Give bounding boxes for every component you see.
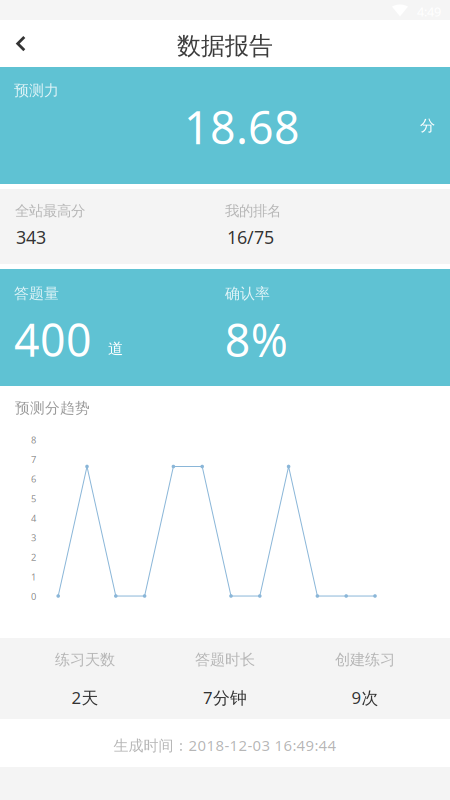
staticText: 练习天数 (55, 650, 115, 669)
staticText: 预测力 (14, 81, 59, 100)
staticText: 1 (31, 570, 36, 583)
staticText: 400 (14, 309, 92, 370)
staticText: 2天 (71, 686, 98, 709)
staticText: 创建练习 (335, 650, 395, 669)
staticText: 分 (420, 116, 435, 135)
staticText: 2 (31, 551, 36, 564)
staticText: 预测分趋势 (15, 399, 90, 417)
staticText: 答题量 (14, 284, 59, 303)
staticText: 6 (31, 473, 36, 485)
staticText: 7分钟 (203, 686, 247, 709)
staticText: 8 (31, 433, 36, 446)
staticText: 5 (31, 492, 36, 505)
staticText: 4 (31, 512, 36, 524)
staticText: 9次 (351, 686, 378, 709)
button[interactable]: Back (0, 20, 46, 67)
staticText: 3 (31, 531, 36, 544)
staticText: 数据报告 (177, 31, 273, 61)
staticText: 16/75 (227, 225, 274, 249)
staticText: 343 (16, 225, 46, 249)
staticText: 8% (225, 309, 288, 370)
staticText: 全站最高分 (15, 202, 85, 220)
staticText: 18.68 (184, 97, 300, 157)
staticText: 生成时间：2018-12-03 16:49:44 (113, 735, 336, 755)
staticText: 道 (108, 339, 123, 358)
staticText: 7 (31, 453, 36, 466)
staticText: 确认率 (225, 284, 270, 303)
staticText: 0 (31, 590, 36, 603)
staticText: 答题时长 (195, 650, 255, 669)
staticText: 我的排名 (225, 202, 281, 220)
